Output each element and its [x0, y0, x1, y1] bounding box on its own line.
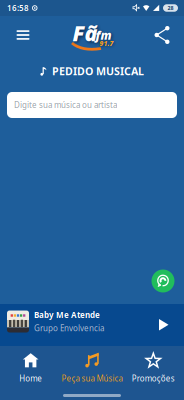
staticText: 28	[167, 4, 173, 12]
staticText: 91.7	[99, 39, 113, 48]
button[interactable]: Home	[0, 346, 61, 384]
staticText: Peça sua Música	[61, 373, 122, 384]
staticText: Grupo Envolvencia	[34, 323, 104, 333]
staticText: Fã	[72, 19, 97, 47]
button[interactable]: Promoções	[123, 346, 184, 384]
staticText: fm	[95, 27, 111, 43]
button[interactable]	[154, 26, 169, 44]
staticText: PEDIDO MUSICAL	[52, 64, 144, 78]
button[interactable]	[159, 319, 184, 331]
staticText: Digite sua música ou artista	[14, 100, 117, 110]
staticText: Promoções	[132, 373, 175, 384]
button[interactable]	[151, 269, 174, 292]
button[interactable]: Baby Me Atende	[0, 304, 184, 346]
button[interactable]	[13, 27, 33, 43]
button[interactable]: Peça sua Música	[61, 346, 123, 384]
staticText: Home	[19, 373, 42, 384]
button[interactable]: Digite sua música ou artista	[7, 92, 177, 118]
staticText: 16:58	[7, 3, 29, 13]
button[interactable]: Fã	[71, 19, 113, 53]
staticText: Baby Me Atende	[34, 310, 100, 320]
